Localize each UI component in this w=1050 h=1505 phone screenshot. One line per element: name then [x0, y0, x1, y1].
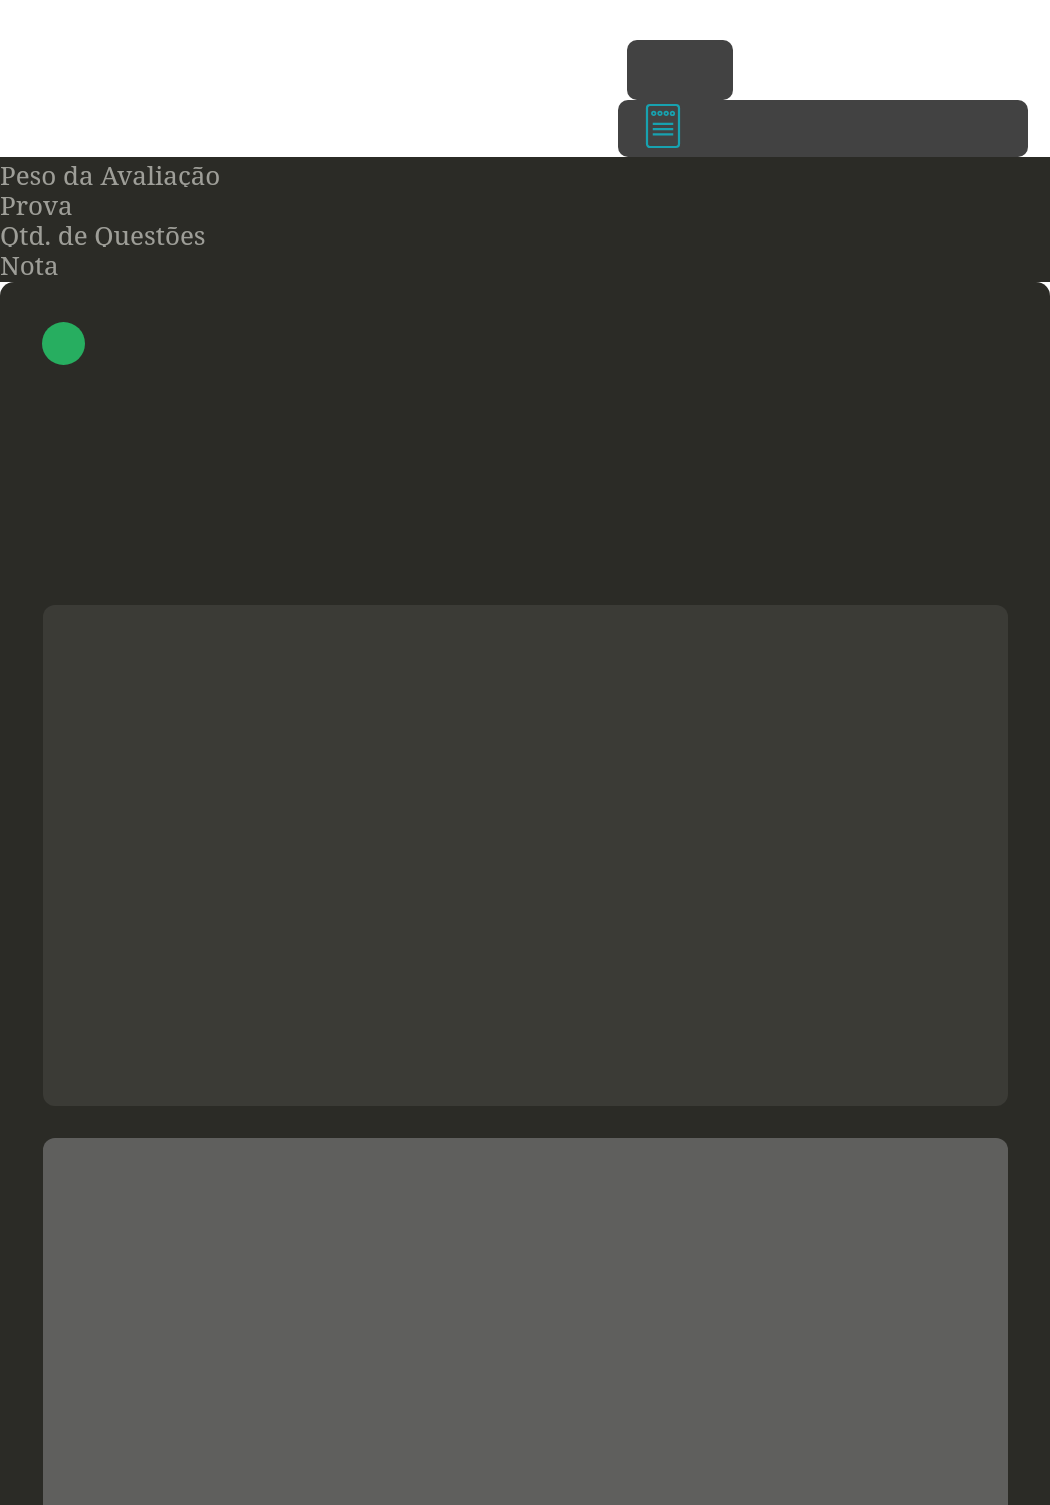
staticText: Prova	[0, 187, 1050, 217]
staticText: Peso da Avaliação	[0, 157, 1050, 187]
button[interactable]: Status	[42, 322, 85, 365]
button[interactable]: Tooltip	[627, 40, 733, 100]
staticText: Qtd. de Questões	[0, 217, 1050, 247]
staticText: Nota	[0, 247, 1050, 277]
button[interactable]: Notes	[645, 103, 681, 149]
